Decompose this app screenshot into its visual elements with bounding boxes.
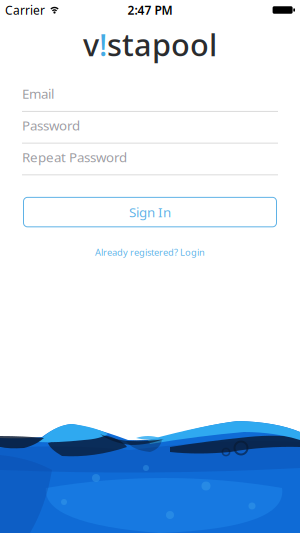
button[interactable]: Already registered? Login <box>95 246 205 258</box>
button[interactable]: Repeat Password <box>22 148 278 180</box>
staticText: Carrier <box>5 2 45 18</box>
staticText: 2:47 PM <box>127 2 172 18</box>
staticText: Sign In <box>129 203 171 221</box>
staticText: stapool <box>107 24 217 65</box>
staticText: Repeat Password <box>22 148 127 166</box>
staticText: Already registered? Login <box>95 246 205 258</box>
button[interactable]: Email <box>22 85 278 116</box>
staticText: Password <box>22 116 80 134</box>
staticText: Email <box>22 85 54 102</box>
button[interactable]: Sign In <box>23 197 276 227</box>
staticText: v <box>83 24 99 65</box>
staticText: ! <box>99 24 107 65</box>
button[interactable]: Password <box>22 116 278 148</box>
